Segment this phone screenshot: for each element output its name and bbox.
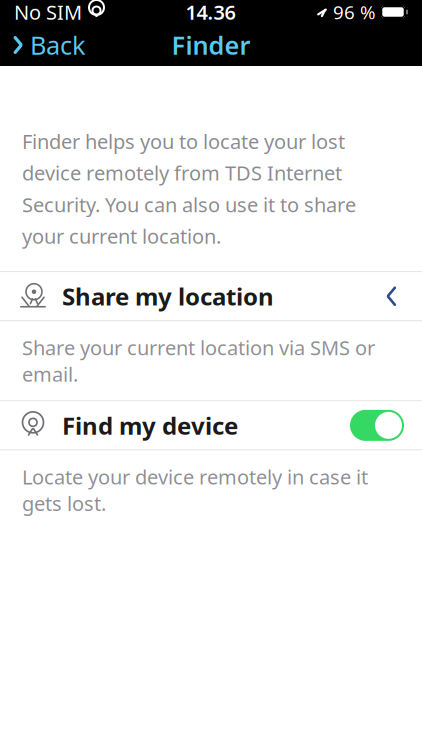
staticText: Back (30, 28, 86, 62)
staticText: Share your current location via SMS or e… (22, 334, 375, 387)
button[interactable]: Share my location (0, 272, 422, 320)
staticText: Finder (171, 28, 250, 62)
button[interactable]: Find my device (0, 401, 422, 449)
staticText: Locate your device remotely in case it g… (22, 463, 368, 516)
staticText: No SIM (14, 0, 82, 25)
staticText: 96 % (333, 0, 376, 24)
staticText: Share my location (62, 280, 274, 312)
staticText: 14.36 (185, 0, 235, 25)
button[interactable]: Back (0, 20, 98, 70)
staticText: Finder helps you to locate your lost dev… (22, 128, 356, 249)
staticText: Find my device (62, 409, 238, 441)
